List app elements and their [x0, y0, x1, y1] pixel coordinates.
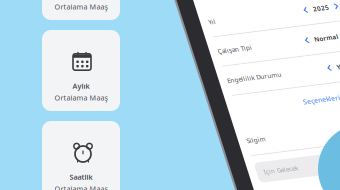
staticText: Ortalama Maaş — [54, 2, 107, 12]
staticText: 2025 — [292, 21, 308, 30]
button[interactable]: Silgim — [188, 130, 317, 158]
staticText: Yok — [297, 80, 308, 88]
button[interactable]: Saatlik — [42, 121, 120, 190]
button[interactable]: Yıllık — [42, 0, 120, 20]
button[interactable]: Aylık — [42, 30, 120, 111]
button[interactable]: Yıl — [188, 11, 317, 40]
button[interactable]: Engellilik Durumu — [188, 70, 317, 98]
staticText: Çalışan Tipi — [188, 50, 222, 59]
staticText: Saatlik — [69, 172, 92, 182]
button[interactable]: Çalışan Tipi — [188, 40, 317, 69]
staticText: Aylık — [72, 81, 89, 91]
staticText: Ortalama Maaş — [54, 184, 107, 190]
staticText: Normal — [284, 50, 308, 59]
staticText: Ortalama Maaş — [54, 93, 107, 103]
staticText: Engellilik Durumu — [188, 80, 242, 88]
